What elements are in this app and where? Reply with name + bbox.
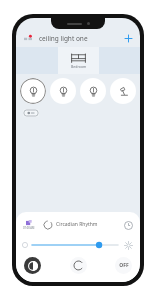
button[interactable]: 07:00 AM <box>22 220 36 230</box>
button[interactable]: Night mode <box>70 257 87 274</box>
staticText: ceiling light one <box>39 34 88 43</box>
button[interactable]: OFF <box>115 257 132 274</box>
staticText: Circadian Rhythm <box>56 221 98 228</box>
button[interactable]: Menu <box>21 32 34 45</box>
staticText: 07:00 AM <box>23 226 35 230</box>
button[interactable]: Color <box>24 257 41 274</box>
button[interactable]: Bedroom <box>58 47 99 74</box>
button[interactable]: Add device <box>122 32 135 45</box>
button[interactable] <box>32 240 118 250</box>
button[interactable]: Light <box>50 78 76 104</box>
staticText: Bedroom <box>71 64 87 69</box>
button[interactable]: Light <box>20 78 46 104</box>
button[interactable]: Circadian Rhythm <box>40 217 118 232</box>
button[interactable]: Light <box>80 78 106 104</box>
button[interactable]: Light <box>110 78 136 104</box>
button[interactable]: Scene <box>23 109 39 117</box>
button[interactable]: Timer <box>122 219 134 231</box>
button[interactable]: Brightness settings <box>122 239 134 251</box>
staticText: OFF <box>119 262 129 269</box>
